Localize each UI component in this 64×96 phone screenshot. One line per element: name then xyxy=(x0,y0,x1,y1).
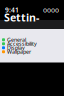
staticText: Accessibility xyxy=(7,40,37,47)
staticText: 9:41 xyxy=(5,6,19,14)
staticText: Display xyxy=(7,44,25,51)
staticText: oooo xyxy=(43,6,59,14)
staticText: Settings xyxy=(4,10,39,39)
staticText: General xyxy=(7,36,26,43)
staticText: Wallpaper xyxy=(7,48,31,55)
